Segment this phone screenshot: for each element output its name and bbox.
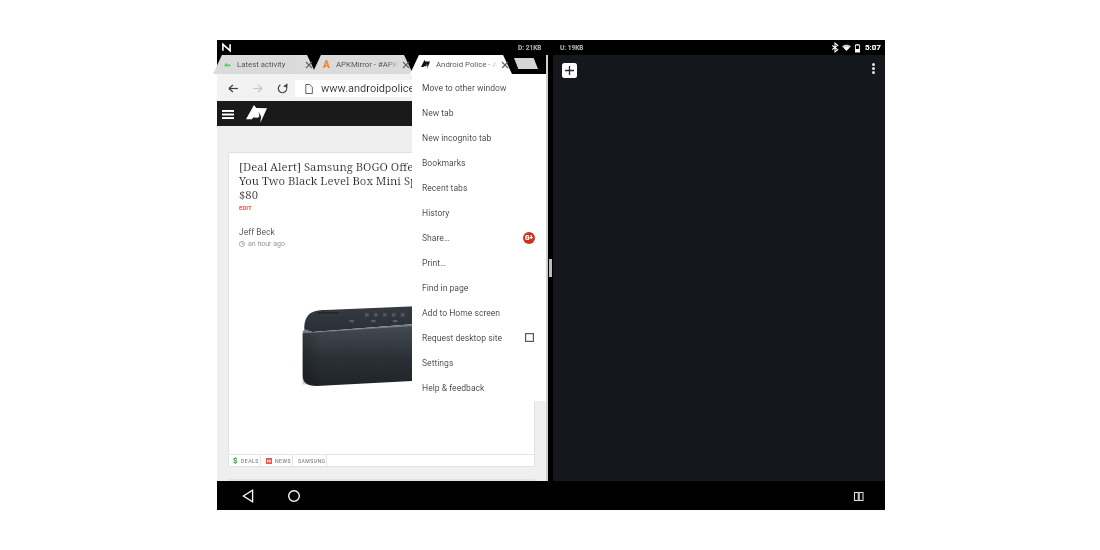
staticText: an hour ago [248,240,285,248]
button[interactable]: Home [282,484,306,508]
button[interactable]: Back [236,484,260,508]
staticText: D: 21KB [518,44,542,52]
button[interactable]: Forward [246,77,268,99]
button[interactable]: NEWS [261,454,293,467]
staticText: Jeff Beck [239,227,275,237]
staticText: [Deal Alert] Samsung BOGO Offer Gets You… [239,159,474,203]
button[interactable]: More options [864,59,882,77]
button[interactable]: Recent tabs [412,175,546,200]
button[interactable]: Find in page [412,275,546,300]
button[interactable]: Android Police - An [410,55,512,74]
button[interactable]: History [412,200,546,225]
staticText: Latest activity [237,60,286,69]
button[interactable]: Request desktop site [412,325,546,350]
button[interactable]: Move to other window [412,75,546,100]
staticText: Settings [422,358,454,368]
staticText: Help & feedback [422,383,485,393]
staticText: 5:07 [865,43,881,52]
staticText: New tab [422,108,454,118]
button[interactable]: Print… [412,250,546,275]
staticText: Print… [422,258,446,268]
button[interactable]: Add [562,63,577,78]
button[interactable]: Settings [412,350,546,375]
button[interactable]: Close tab [400,59,411,70]
staticText: SAMSUNG [298,458,326,464]
button[interactable]: New tab [412,100,546,125]
staticText: Share… [422,233,450,243]
button[interactable]: New tab [514,58,538,69]
staticText: A [323,59,330,71]
staticText: History [422,208,450,218]
button[interactable]: Latest activity [213,55,316,74]
staticText: NEWS [275,458,291,464]
button[interactable]: Close tab [499,59,510,70]
staticText: Move to other window [422,83,507,93]
button[interactable]: $ [228,454,261,467]
button[interactable]: Help & feedback [412,375,546,400]
button[interactable]: Menu [218,104,238,124]
button[interactable]: Add to Home screen [412,300,546,325]
staticText: U: 19KB [560,44,584,52]
staticText: EDIT [239,204,252,211]
staticText: Find in page [422,283,469,293]
button[interactable]: Close tab [303,59,314,70]
button[interactable]: [Deal Alert] Samsung BOGO Offer Gets You… [228,152,535,467]
button[interactable]: New incognito tab [412,125,546,150]
button[interactable]: Back [222,77,244,99]
button[interactable]: www.androidpolice.com [295,80,540,97]
button[interactable]: Reload [271,77,293,99]
staticText: Android Police - An [436,60,498,69]
button[interactable]: SAMSUNG [293,454,327,467]
staticText: APKMirror - #APKP [336,60,399,69]
staticText: G+ [525,234,533,242]
staticText: Bookmarks [422,158,466,168]
button[interactable]: Share… [412,225,546,250]
button[interactable]: Bookmarks [412,150,546,175]
button[interactable]: Split screen [847,485,869,507]
staticText: $ [233,456,238,465]
button[interactable]: A [312,55,413,74]
staticText: New incognito tab [422,133,492,143]
staticText: Recent tabs [422,183,468,193]
staticText: Add to Home screen [422,308,501,318]
staticText: Request desktop site [422,333,503,343]
staticText: www.androidpolice.com [321,82,440,95]
staticText: DEALS [241,458,259,464]
